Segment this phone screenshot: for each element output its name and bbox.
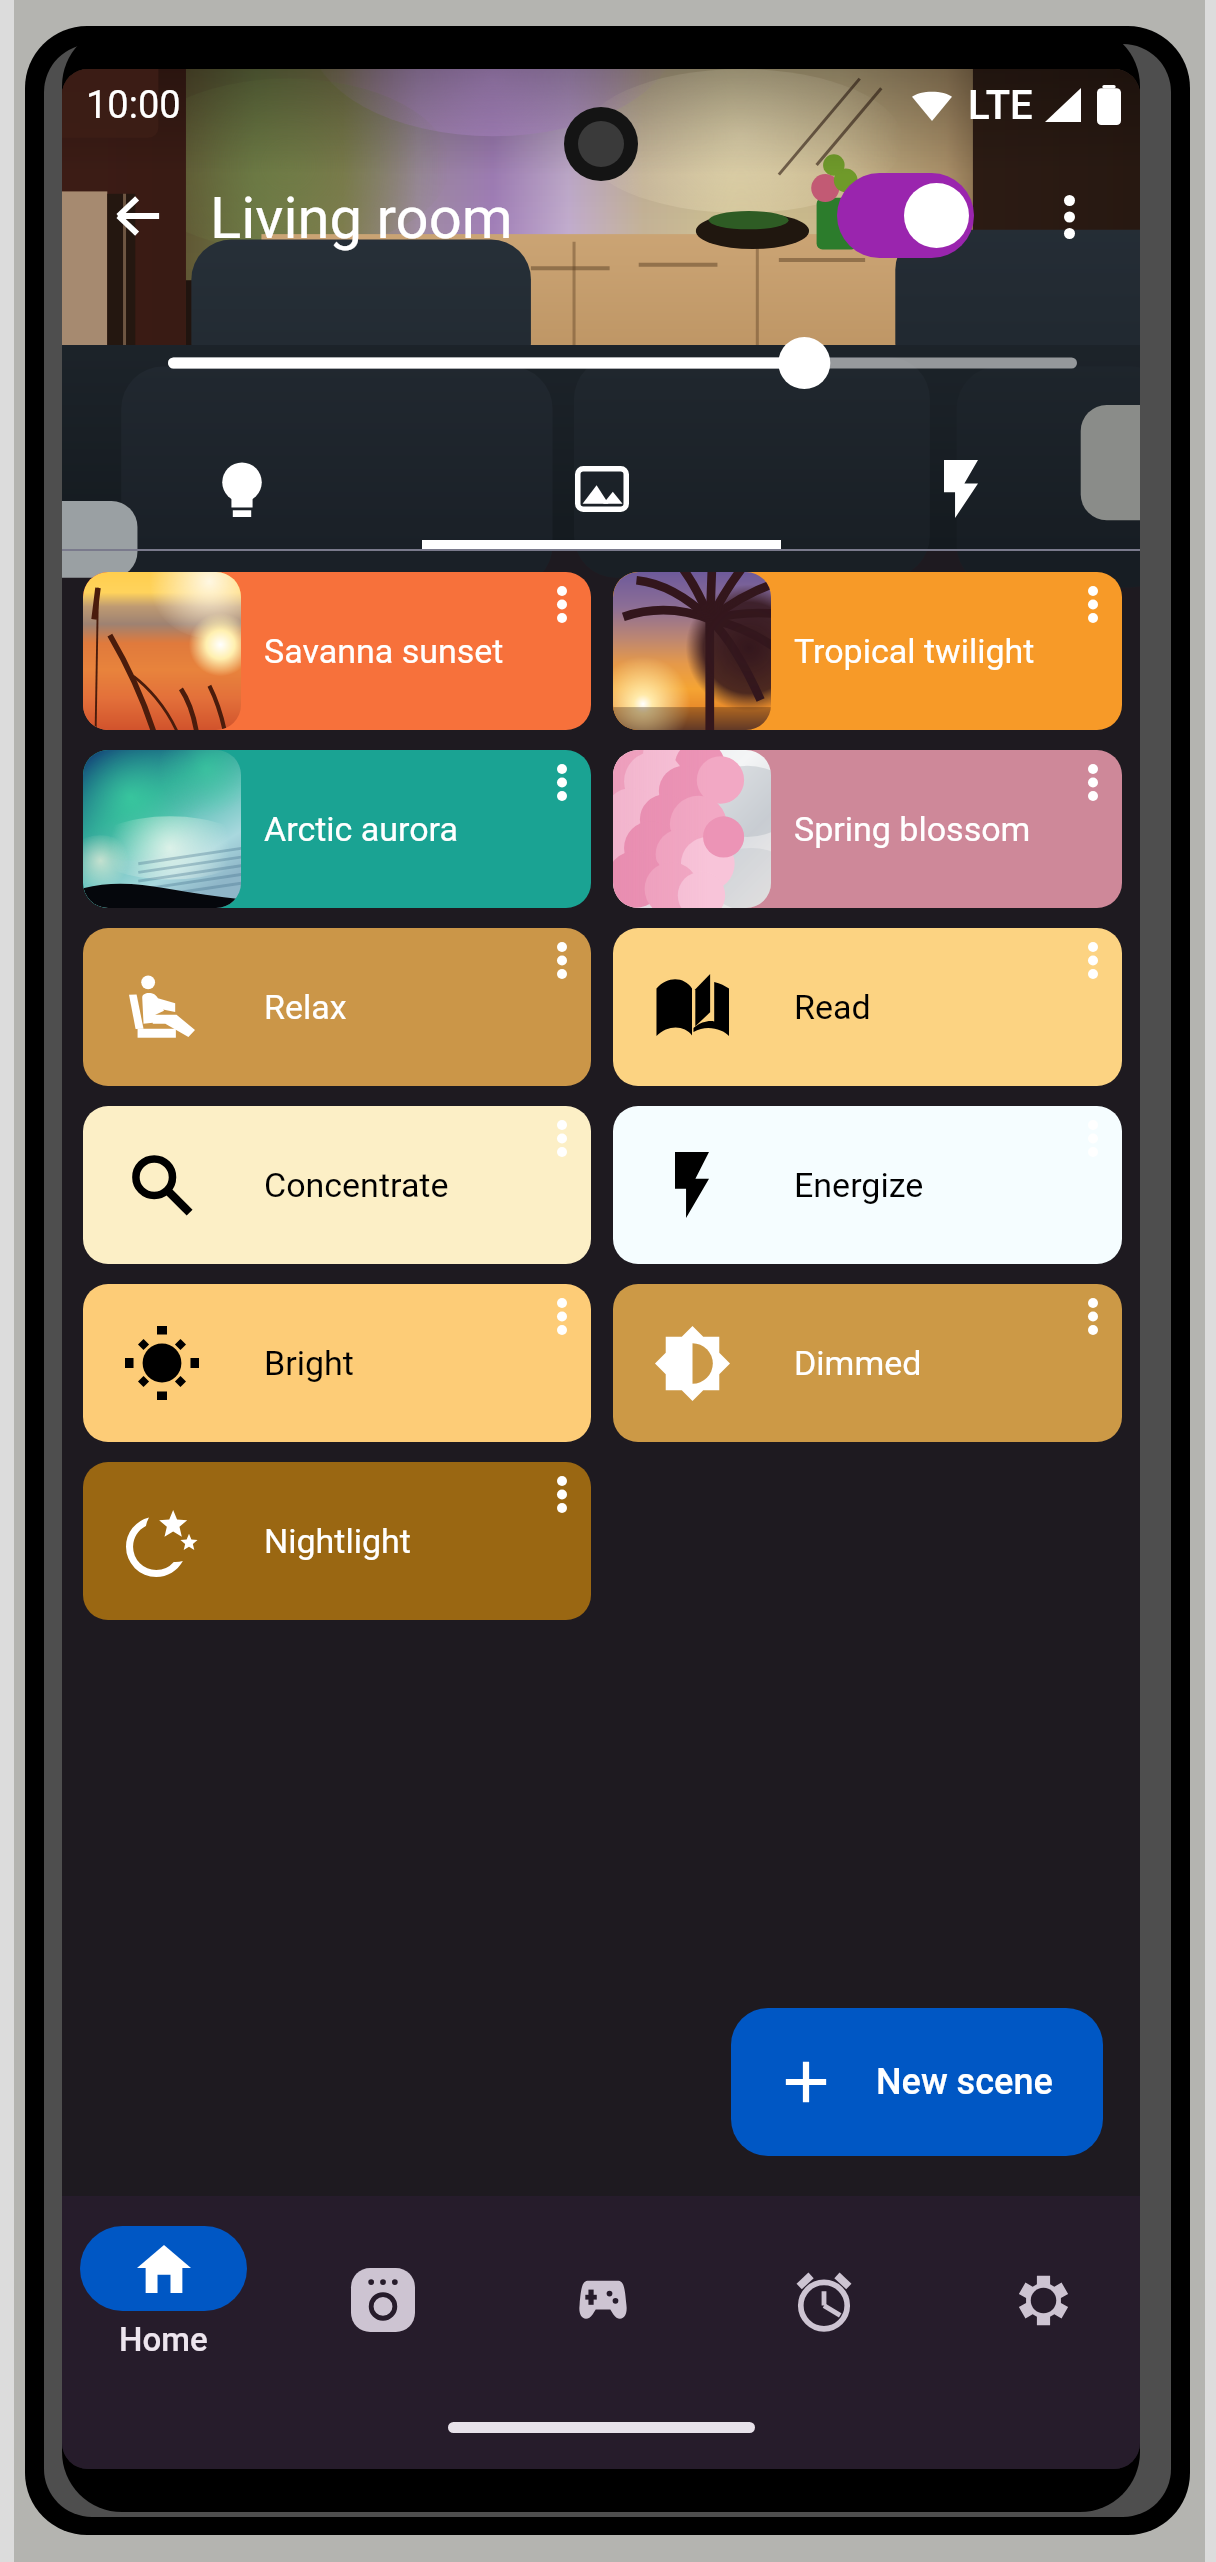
staticText: Spring blossom [794,809,1031,849]
button[interactable]: Room power [837,173,974,258]
button[interactable]: Camera [328,2254,438,2346]
button[interactable]: Scene options [532,1106,591,1171]
button[interactable]: Scene options [532,750,591,815]
button[interactable]: Scene options [1063,572,1122,637]
button[interactable]: Spring blossom [613,750,1122,908]
button[interactable]: Automations [781,434,1140,544]
staticText: Home [119,2320,208,2359]
button[interactable]: Lights [62,434,422,544]
button[interactable]: Savanna sunset [83,572,591,730]
button[interactable]: Scene options [1063,1284,1122,1349]
button[interactable]: More options [1025,172,1114,261]
button[interactable]: Scenes [422,434,781,544]
staticText: Tropical twilight [794,631,1035,671]
button[interactable]: Games [548,2254,658,2346]
button[interactable]: Dimmed [613,1284,1122,1442]
staticText: Concentrate [264,1165,449,1205]
staticText: LTE [968,82,1033,129]
button[interactable]: Energize [613,1106,1122,1264]
button[interactable]: Scene options [532,928,591,993]
button[interactable]: Alarms [769,2254,879,2346]
button[interactable]: Scene options [532,1462,591,1527]
button[interactable]: Relax [83,928,591,1086]
button[interactable]: New scene [731,2008,1103,2156]
button[interactable]: Scene options [532,572,591,637]
button[interactable]: Scene options [532,1284,591,1349]
staticText: New scene [876,2061,1053,2103]
button[interactable]: Back [88,166,188,266]
button[interactable]: Scene options [1063,750,1122,815]
button[interactable]: Tropical twilight [613,572,1122,730]
button[interactable]: Scene options [1063,1106,1122,1171]
button[interactable]: Nightlight [83,1462,591,1620]
button[interactable] [80,2226,247,2311]
staticText: Savanna sunset [264,631,504,671]
staticText: Energize [794,1165,924,1205]
button[interactable]: Bright [83,1284,591,1442]
button[interactable]: Scene options [1063,928,1122,993]
button[interactable]: Concentrate [83,1106,591,1264]
staticText: Arctic aurora [264,809,458,849]
button[interactable]: Arctic aurora [83,750,591,908]
button[interactable]: Read [613,928,1122,1086]
staticText: 10:00 [86,83,181,128]
staticText: Read [794,987,871,1027]
staticText: Living room [210,184,513,252]
staticText: Bright [264,1343,354,1383]
button[interactable]: Settings [988,2254,1098,2346]
staticText: Relax [264,987,347,1027]
staticText: Nightlight [264,1521,411,1561]
staticText: Dimmed [794,1343,922,1383]
